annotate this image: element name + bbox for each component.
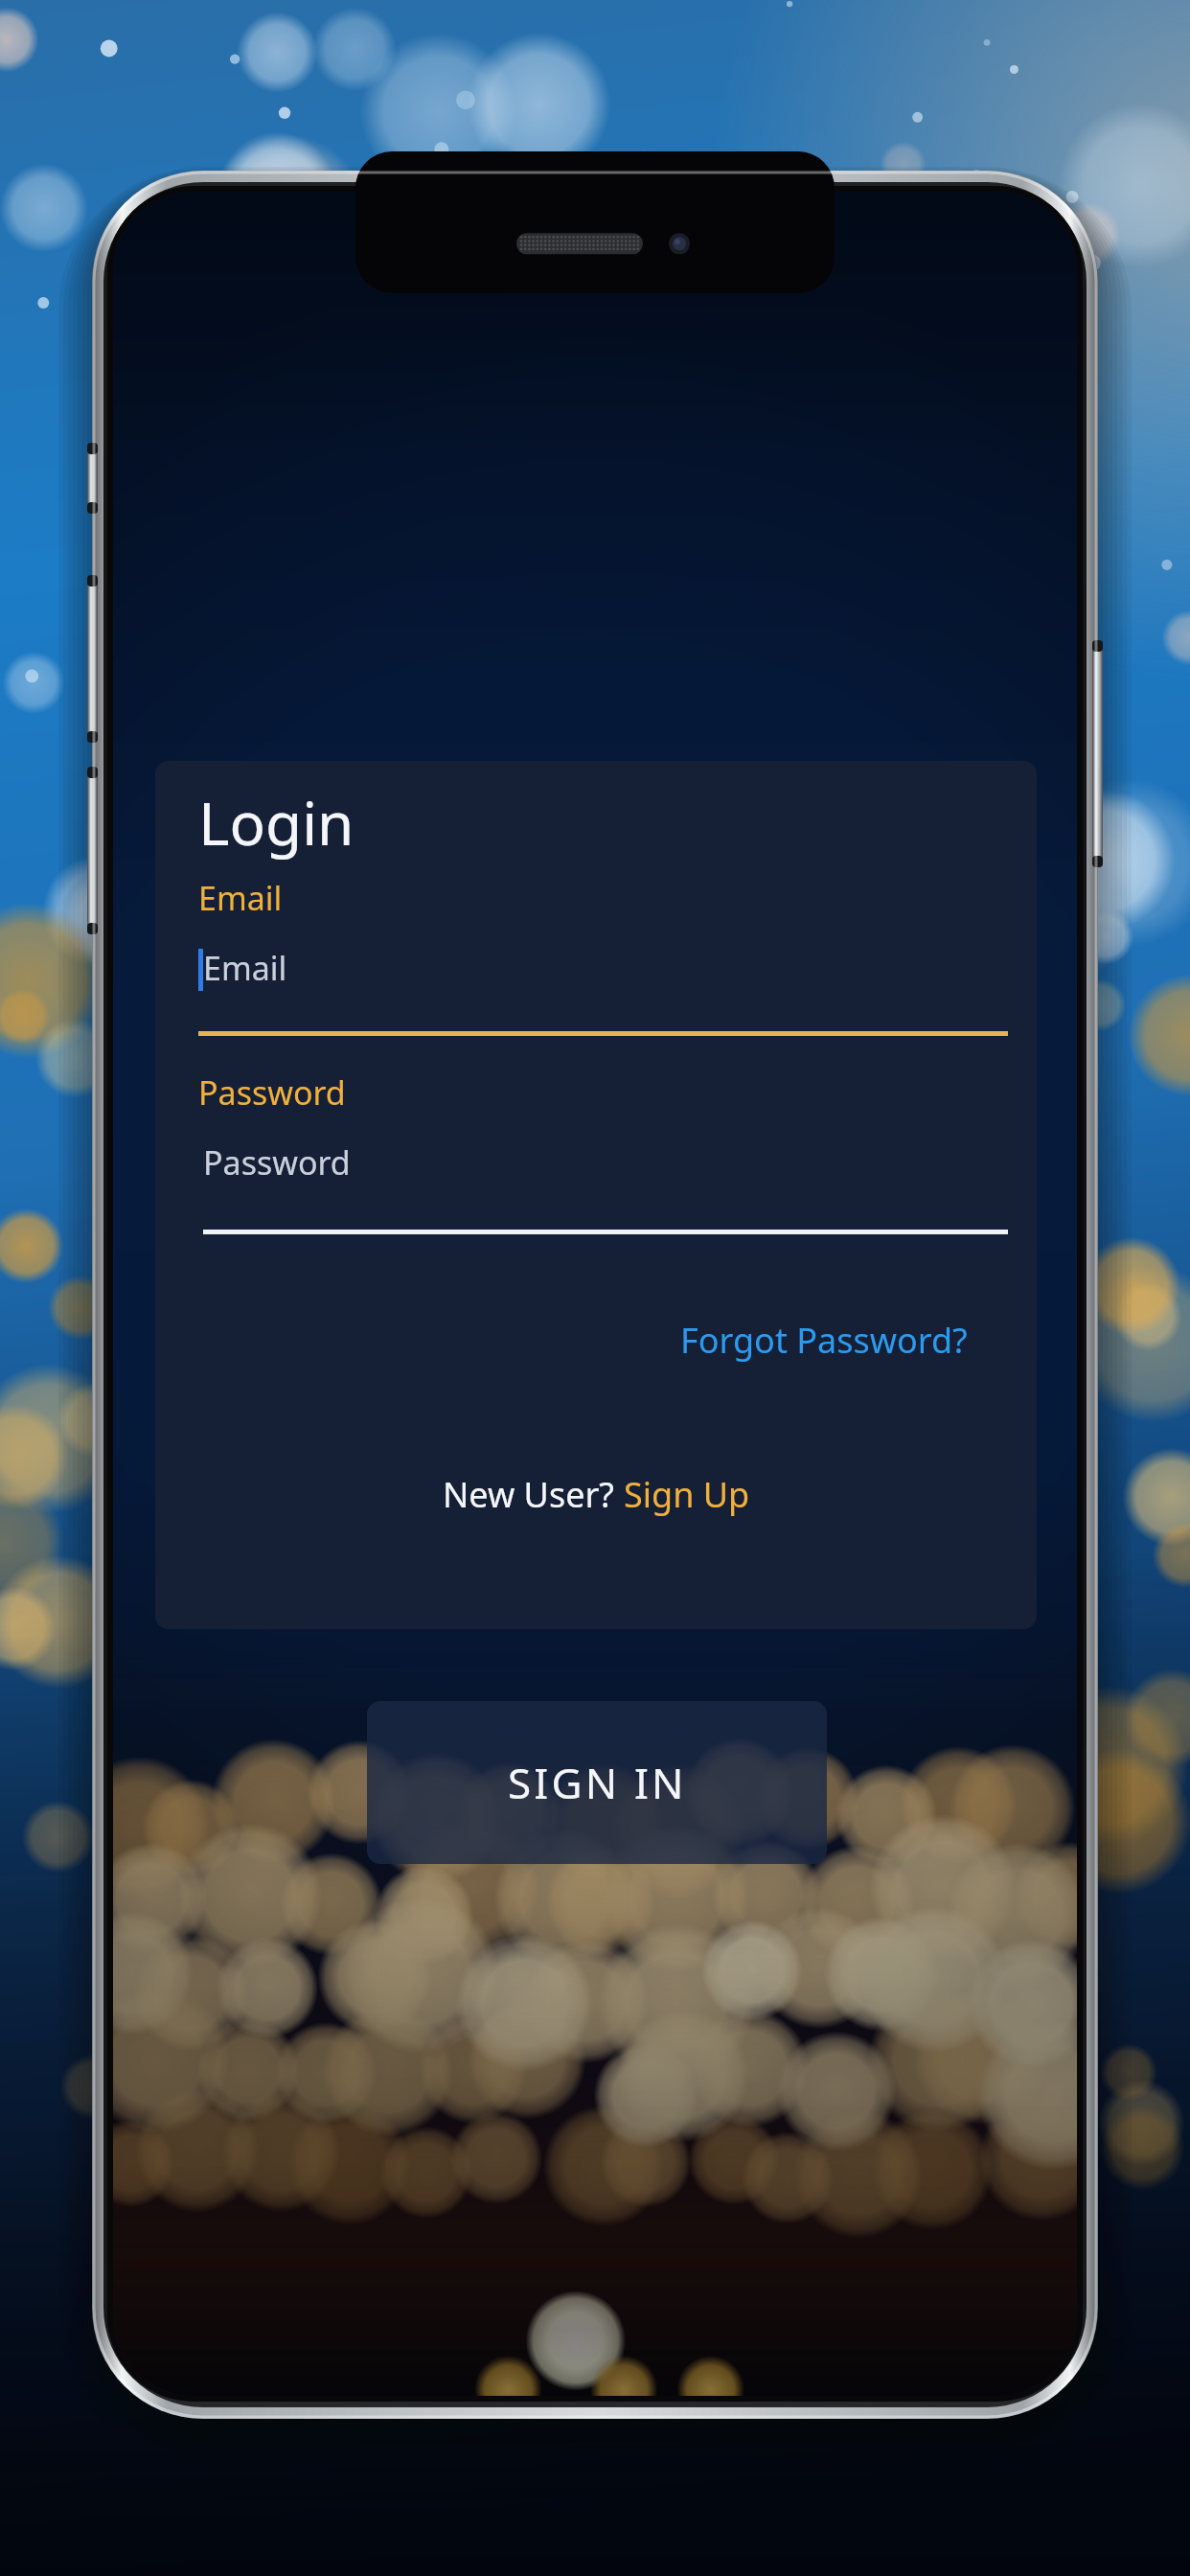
staticText: Forgot Password? [680,1317,968,1364]
button[interactable]: Sign Up [624,1471,750,1518]
button[interactable]: Forgot Password? [676,1311,972,1369]
staticText: Login [198,782,355,862]
staticText: Password [198,1070,346,1115]
staticText: Sign Up [624,1471,750,1518]
staticText: Email [203,946,287,990]
staticText: New User? [443,1471,624,1518]
staticText: Password [203,1140,351,1184]
button[interactable]: SIGN IN [367,1701,827,1864]
staticText: SIGN IN [508,1754,687,1811]
staticText: Email [198,876,283,920]
button[interactable]: Email [155,946,1037,1049]
button[interactable]: Password [155,1140,1037,1240]
